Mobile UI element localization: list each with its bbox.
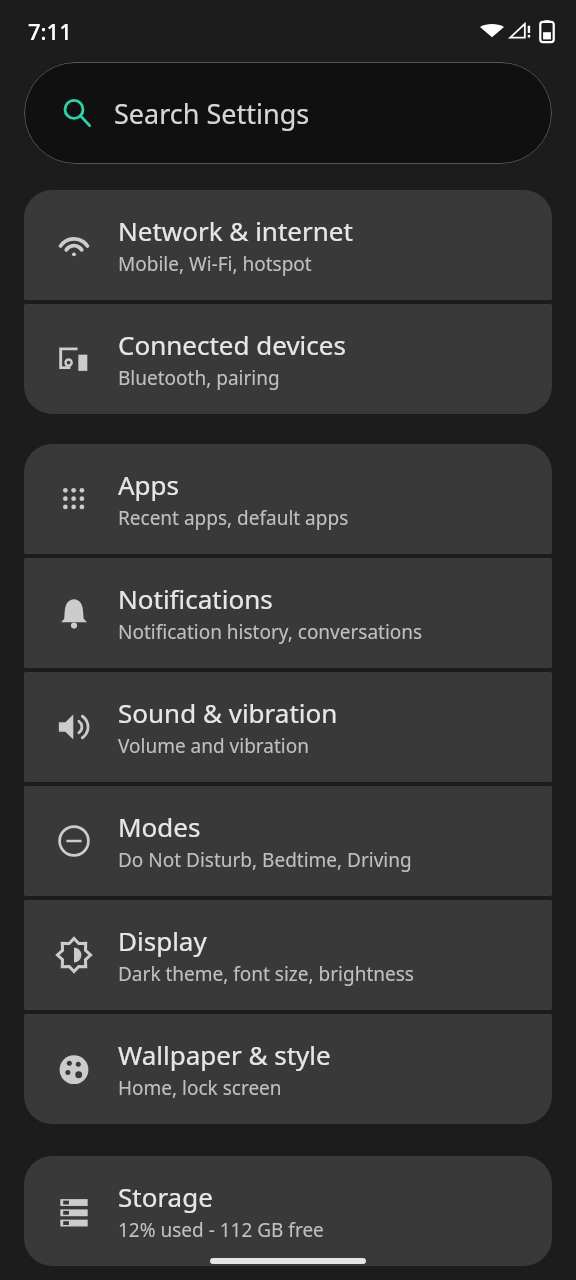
button[interactable]: Storage xyxy=(24,1156,552,1266)
staticText: Do Not Disturb, Bedtime, Driving xyxy=(118,847,412,873)
staticText: Storage xyxy=(118,1179,213,1214)
button[interactable]: Display xyxy=(24,900,552,1010)
button[interactable]: Modes xyxy=(24,786,552,896)
staticText: Dark theme, font size, brightness xyxy=(118,961,414,987)
button[interactable]: Search Settings xyxy=(24,62,552,164)
button[interactable]: Notifications xyxy=(24,558,552,668)
staticText: Home, lock screen xyxy=(118,1075,282,1101)
button[interactable]: Wallpaper & style xyxy=(24,1014,552,1124)
staticText: Notifications xyxy=(118,581,273,616)
staticText: Wallpaper & style xyxy=(118,1037,331,1072)
button[interactable]: Connected devices xyxy=(24,304,552,414)
staticText: Mobile, Wi-Fi, hotspot xyxy=(118,251,312,277)
staticText: 7:11 xyxy=(28,16,72,46)
staticText: Apps xyxy=(118,467,180,502)
staticText: Recent apps, default apps xyxy=(118,505,349,531)
button[interactable]: Apps xyxy=(24,444,552,554)
button[interactable]: Sound & vibration xyxy=(24,672,552,782)
staticText: Bluetooth, pairing xyxy=(118,365,280,391)
staticText: Network & internet xyxy=(118,213,353,248)
staticText: Notification history, conversations xyxy=(118,619,423,645)
staticText: Display xyxy=(118,923,207,958)
staticText: Search Settings xyxy=(114,95,310,132)
staticText: Sound & vibration xyxy=(118,695,338,730)
button[interactable]: Network & internet xyxy=(24,190,552,300)
staticText: Modes xyxy=(118,809,201,844)
staticText: 12% used - 112 GB free xyxy=(118,1217,324,1243)
staticText: Volume and vibration xyxy=(118,733,309,759)
staticText: Connected devices xyxy=(118,327,346,362)
